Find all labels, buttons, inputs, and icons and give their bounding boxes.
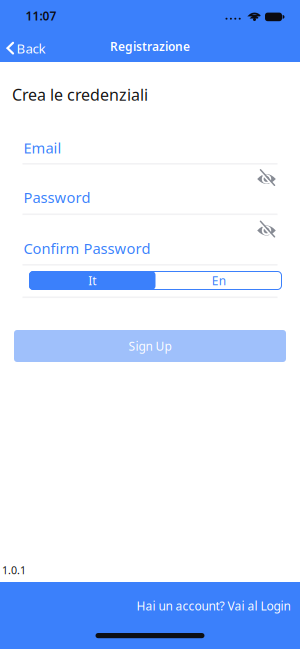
staticText: Crea le credenziali — [12, 84, 148, 105]
staticText: Hai un account? Vai al Login — [136, 598, 290, 614]
button[interactable]: Sign Up — [14, 330, 286, 362]
button[interactable]: Back — [6, 39, 45, 57]
staticText: Registrazione — [110, 38, 190, 54]
button[interactable] — [256, 168, 277, 188]
staticText: Back — [16, 39, 45, 57]
staticText: Email — [23, 138, 61, 157]
staticText: It — [88, 272, 96, 288]
staticText: Confirm Password — [23, 239, 150, 258]
staticText: 1.0.1 — [2, 563, 26, 577]
button[interactable]: En — [155, 271, 282, 290]
button[interactable] — [256, 219, 277, 239]
button[interactable]: It — [29, 271, 155, 290]
button[interactable]: Hai un account? Vai al Login — [136, 598, 290, 614]
staticText: Sign Up — [128, 338, 171, 354]
staticText: 11:07 — [25, 8, 56, 24]
staticText: Password — [23, 188, 90, 207]
staticText: En — [212, 272, 226, 288]
